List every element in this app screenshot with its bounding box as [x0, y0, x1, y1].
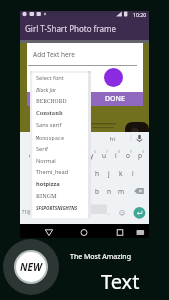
staticText: y [90, 151, 94, 160]
button[interactable]: Normal [30, 155, 91, 167]
button[interactable]: hotpizza [30, 178, 91, 190]
button[interactable]: p [134, 150, 146, 161]
button[interactable]: Back [38, 224, 60, 238]
button[interactable]: d [54, 168, 66, 179]
button[interactable]: f [66, 168, 78, 179]
staticText: b [95, 187, 99, 196]
staticText: u [102, 151, 107, 160]
button[interactable]: e [50, 150, 62, 161]
staticText: Add Text here [33, 50, 75, 59]
staticText: Select font [36, 74, 64, 82]
staticText: i [115, 151, 117, 160]
staticText: j [108, 169, 110, 178]
staticText: 8 [118, 149, 121, 154]
button[interactable]: Switch keyboard [132, 224, 149, 238]
button[interactable]: m [115, 186, 127, 197]
button[interactable]: y [86, 150, 98, 161]
staticText: 0 [142, 149, 145, 154]
button[interactable]: n [103, 186, 115, 197]
staticText: DONE [105, 94, 125, 104]
button[interactable]: v [78, 186, 90, 197]
staticText: n [107, 187, 112, 196]
staticText: p [138, 151, 142, 160]
staticText: a [34, 169, 38, 178]
button[interactable]: h [91, 168, 103, 179]
staticText: Normal [36, 157, 56, 165]
staticText: 7 [106, 149, 109, 154]
button[interactable]: Themi_head [30, 166, 91, 178]
staticText: s [46, 169, 50, 178]
staticText: e [54, 151, 58, 160]
staticText: m [118, 187, 125, 196]
staticText: q [29, 151, 33, 160]
button[interactable]: Home [73, 224, 95, 238]
staticText: l [132, 169, 134, 178]
button[interactable]: Period [103, 207, 115, 218]
button[interactable]: SFSPORTSNIGHTNS [30, 202, 91, 214]
staticText: z [46, 187, 50, 196]
button[interactable]: o [122, 150, 134, 161]
button[interactable]: z [42, 186, 54, 197]
staticText: The Most Amazing [70, 252, 131, 262]
staticText: k [119, 169, 123, 178]
button[interactable]: Recent apps [109, 224, 131, 238]
staticText: hotpizza [36, 180, 60, 188]
button[interactable]: Pick text colour [104, 68, 123, 87]
staticText: 6 [94, 149, 97, 154]
button[interactable]: w [37, 150, 49, 161]
button[interactable]: a [30, 168, 42, 179]
button[interactable]: l [127, 168, 139, 179]
button[interactable]: x [54, 186, 66, 197]
button[interactable]: Serif [30, 143, 91, 155]
button[interactable]: Sans serif [30, 119, 91, 131]
staticText: NEW [20, 260, 42, 274]
staticText: ?1@ [22, 209, 32, 216]
button[interactable]: Girl T-Shart Photo frame [20, 17, 149, 40]
staticText: SFSPORTSNIGHTNS [36, 205, 78, 211]
button[interactable]: u [98, 150, 110, 161]
staticText: RINGM [36, 192, 57, 200]
staticText: Black Jar [36, 86, 57, 93]
button[interactable]: i [110, 150, 122, 161]
staticText: 2 [45, 149, 48, 154]
button[interactable]: BERCHORD [30, 95, 91, 107]
button[interactable]: Black Jar [30, 83, 91, 95]
button[interactable]: RINGM [30, 190, 91, 202]
button[interactable]: s [42, 168, 54, 179]
button[interactable]: Select font [30, 72, 91, 84]
staticText: hi [110, 135, 115, 142]
staticText: Serif [36, 145, 48, 153]
button[interactable]: j [103, 168, 115, 179]
button[interactable]: k [115, 168, 127, 179]
staticText: Text [101, 268, 140, 295]
button[interactable]: q [25, 150, 37, 161]
staticText: 9 [130, 149, 133, 154]
button[interactable]: New [3, 239, 59, 295]
button[interactable]: Monospace [30, 131, 91, 143]
staticText: Girl T-Shart Photo frame [25, 23, 116, 34]
staticText: ☺ [119, 209, 126, 216]
button[interactable]: DONE [27, 92, 143, 106]
button[interactable]: Emoji [116, 207, 128, 218]
button[interactable]: Constanb [30, 107, 91, 119]
staticText: Sans serif [36, 121, 62, 129]
button[interactable]: b [91, 186, 103, 197]
button[interactable]: g [78, 168, 90, 179]
button[interactable]: ?1@ [20, 207, 34, 218]
staticText: BERCHORD [36, 97, 67, 105]
staticText: . [108, 209, 110, 217]
